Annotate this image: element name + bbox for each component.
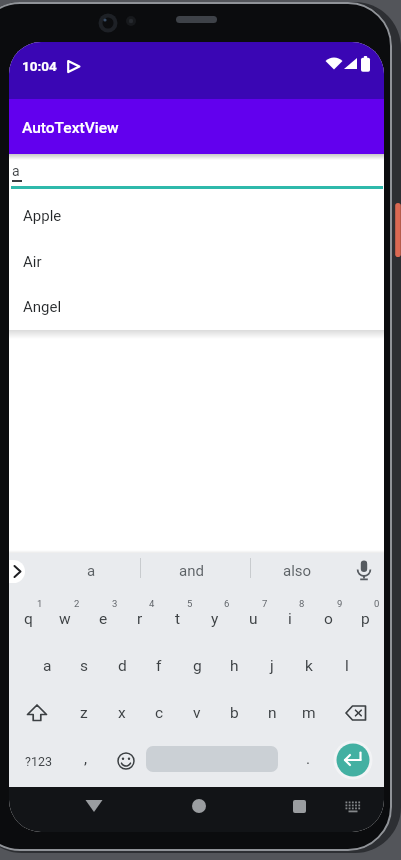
staticText: k [305, 657, 313, 675]
staticText: a [87, 562, 96, 580]
button[interactable]: f [141, 646, 177, 686]
button[interactable]: a [61, 558, 121, 584]
staticText: s [80, 657, 88, 675]
staticText: i [288, 610, 292, 628]
button[interactable]: also [262, 558, 332, 584]
staticText: f [156, 657, 162, 675]
staticText: Angel [23, 298, 62, 316]
staticText: o [324, 610, 333, 628]
button[interactable]: l [329, 646, 365, 686]
button[interactable] [355, 560, 373, 581]
staticText: j [270, 657, 274, 675]
staticText: y [211, 610, 219, 628]
button[interactable] [192, 799, 206, 813]
button[interactable] [85, 799, 103, 813]
button[interactable]: p [347, 599, 383, 639]
button[interactable] [11, 160, 383, 188]
button[interactable]: Angel [23, 294, 223, 320]
staticText: 10:04 [22, 58, 57, 74]
button[interactable]: g [179, 646, 215, 686]
staticText: 7 [262, 598, 268, 609]
staticText: q [24, 610, 33, 628]
staticText: x [118, 704, 126, 722]
staticText: t [175, 610, 181, 628]
staticText: c [155, 704, 164, 722]
button[interactable]: u [235, 599, 271, 639]
button[interactable]: x [104, 693, 140, 733]
staticText: ?123 [25, 754, 52, 769]
button[interactable]: n [254, 693, 290, 733]
staticText: d [118, 657, 127, 675]
staticText: AutoTextView [22, 119, 119, 137]
staticText: , [84, 750, 88, 768]
button[interactable]: i [272, 599, 308, 639]
button[interactable] [26, 704, 48, 722]
staticText: u [249, 610, 258, 628]
button[interactable]: z [66, 693, 102, 733]
staticText: b [230, 704, 239, 722]
staticText: also [283, 562, 312, 580]
button[interactable]: d [104, 646, 140, 686]
staticText: and [179, 562, 204, 580]
button[interactable]: , [76, 746, 96, 772]
staticText: h [230, 657, 239, 675]
button[interactable]: s [66, 646, 102, 686]
button[interactable]: w [47, 599, 83, 639]
button[interactable]: o [310, 599, 346, 639]
button[interactable] [117, 752, 135, 770]
button[interactable]: and [156, 558, 226, 584]
button[interactable]: b [216, 693, 252, 733]
button[interactable]: v [179, 693, 215, 733]
staticText: 4 [149, 598, 155, 609]
staticText: Air [23, 253, 42, 271]
button[interactable] [9, 560, 25, 583]
button[interactable]: t [160, 599, 196, 639]
staticText: m [302, 704, 316, 722]
staticText: 2 [74, 598, 80, 609]
button[interactable]: j [254, 646, 290, 686]
staticText: e [99, 610, 108, 628]
button[interactable]: q [10, 599, 46, 639]
button[interactable]: . [298, 746, 318, 772]
button[interactable] [345, 801, 361, 813]
staticText: z [80, 704, 88, 722]
button[interactable]: h [216, 646, 252, 686]
button[interactable]: k [291, 646, 327, 686]
button[interactable] [333, 740, 373, 780]
staticText: 9 [337, 598, 343, 609]
button[interactable]: e [85, 599, 121, 639]
staticText: 1 [37, 598, 43, 609]
staticText: 5 [187, 598, 193, 609]
button[interactable]: a [29, 646, 65, 686]
button[interactable] [293, 800, 306, 813]
button[interactable]: Apple [23, 203, 223, 229]
staticText: 3 [112, 598, 118, 609]
staticText: g [193, 657, 202, 675]
button[interactable]: c [141, 693, 177, 733]
staticText: a [12, 163, 20, 179]
button[interactable] [146, 746, 278, 772]
staticText: 6 [224, 598, 230, 609]
button[interactable]: ?123 [16, 748, 60, 774]
button[interactable]: r [122, 599, 158, 639]
staticText: l [345, 657, 349, 675]
staticText: v [193, 704, 201, 722]
staticText: r [137, 610, 143, 628]
button[interactable]: Air [23, 249, 223, 275]
staticText: a [43, 657, 52, 675]
button[interactable] [345, 705, 368, 721]
staticText: . [306, 750, 311, 768]
staticText: n [268, 704, 277, 722]
staticText: 0 [374, 598, 380, 609]
staticText: 8 [299, 598, 305, 609]
button[interactable]: y [197, 599, 233, 639]
staticText: p [361, 610, 370, 628]
button[interactable]: m [291, 693, 327, 733]
staticText: Apple [23, 207, 62, 225]
staticText: w [59, 610, 71, 628]
